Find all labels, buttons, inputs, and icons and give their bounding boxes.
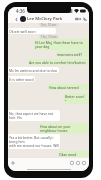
staticText: 4:36: [16, 8, 25, 14]
staticText: Hi Lee Maj, How these have to your dog g…: [35, 40, 88, 49]
button[interactable]: Call: [81, 15, 88, 22]
button[interactable]: My Im waiting and due to dog: [8, 67, 59, 73]
button[interactable]: Back: [13, 16, 19, 22]
staticText: No, that aspect we have not him. His wee…: [9, 111, 59, 120]
staticText: Are you able to comfort him/button team?: [29, 60, 88, 64]
staticText: My Im waiting and due to dog: [9, 68, 57, 72]
staticText: Yes a bit better. But usually i bring hi…: [9, 135, 59, 148]
button[interactable]: Ok get well soon: [8, 28, 56, 34]
staticText: Better soon! •: [65, 94, 85, 103]
staticText: How about tanned other dog?: [49, 85, 88, 89]
button[interactable]: Camera: [75, 160, 81, 166]
button[interactable]: Voice message: [81, 160, 87, 166]
button[interactable]: Okay good: [58, 151, 89, 157]
button[interactable]: No, that aspect we have not him. His wee…: [8, 110, 60, 121]
button[interactable]: Yes a bit better. But usually i bring hi…: [8, 134, 60, 149]
button[interactable]: improving well?: [56, 51, 89, 57]
staticText: Okay good: [59, 152, 77, 156]
button[interactable]: Better soon! •: [64, 93, 89, 104]
button[interactable]: It is other good: [8, 76, 35, 82]
button[interactable]: Video call: [74, 15, 81, 22]
staticText: It is other good: [9, 77, 34, 81]
staticText: Lee McClory Park: [27, 16, 63, 22]
staticText: How about on your neighbour house lives?: [40, 124, 88, 133]
button[interactable]: Sticker: [69, 160, 75, 166]
button[interactable]: How about tanned other dog?: [48, 84, 89, 90]
button[interactable]: Attach: [10, 160, 16, 166]
staticText: improving well?: [57, 52, 82, 56]
staticText: Ok get well soon: [9, 29, 36, 33]
button[interactable]: How about on your neighbour house lives?: [39, 123, 89, 134]
staticText: Thu, 10 am: [41, 35, 57, 39]
button[interactable]: Are you able to comfort him/button team?: [28, 59, 89, 65]
button[interactable]: Hi Lee Maj, How these have to your dog g…: [34, 39, 89, 50]
staticText: Tue, 10 am: [41, 23, 57, 27]
